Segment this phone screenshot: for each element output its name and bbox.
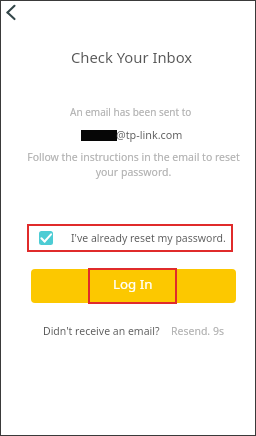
button[interactable]: Log In — [31, 269, 236, 303]
staticText: Check Your Inbox — [71, 47, 193, 67]
staticText: Didn't receive an email? — [43, 324, 160, 338]
staticText: Follow the instructions in the email to … — [27, 150, 240, 179]
button[interactable]: I've already reset my password. — [27, 224, 233, 252]
button[interactable]: Resend. 9s — [171, 324, 224, 338]
staticText: An email has been sent to — [70, 105, 192, 119]
staticText: I've already reset my password. — [71, 231, 226, 245]
staticText: @tp-link.com — [116, 127, 183, 142]
button[interactable]: Back — [1, 1, 23, 27]
staticText: Log In — [113, 275, 153, 293]
